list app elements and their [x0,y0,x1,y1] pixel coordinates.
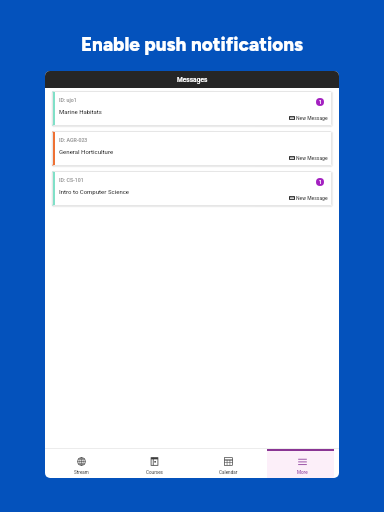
staticText: 1 [319,99,322,105]
button[interactable]: ID: ujo1 [52,91,332,126]
button[interactable]: Calendar [191,449,265,478]
staticText: Messages [177,76,208,84]
staticText: New Message [296,195,328,201]
other: Calendar [224,457,233,466]
button[interactable]: Courses [118,449,191,478]
staticText: More [297,470,308,475]
staticText: ID: CS-101 [59,177,84,183]
staticText: Stream [74,470,89,475]
staticText: ID: ujo1 [59,97,77,103]
button[interactable]: More [265,449,339,478]
staticText: Enable push notifications [0,33,384,56]
staticText: Calendar [219,470,238,475]
other: Stream [77,457,86,466]
button[interactable]: ID: CS-101 [52,171,332,206]
staticText: Courses [146,470,163,475]
staticText: 1 [319,179,322,185]
other: Courses [150,457,159,466]
button[interactable]: Stream [45,449,118,478]
button[interactable]: ID: AGR-023 [52,131,332,166]
staticText: New Message [296,115,328,121]
staticText: Marine Habitats [59,108,102,115]
staticText: General Horticulture [59,148,114,155]
other: More [298,457,307,466]
staticText: Intro to Computer Science [59,188,130,195]
staticText: New Message [296,155,328,161]
staticText: ID: AGR-023 [59,137,88,143]
